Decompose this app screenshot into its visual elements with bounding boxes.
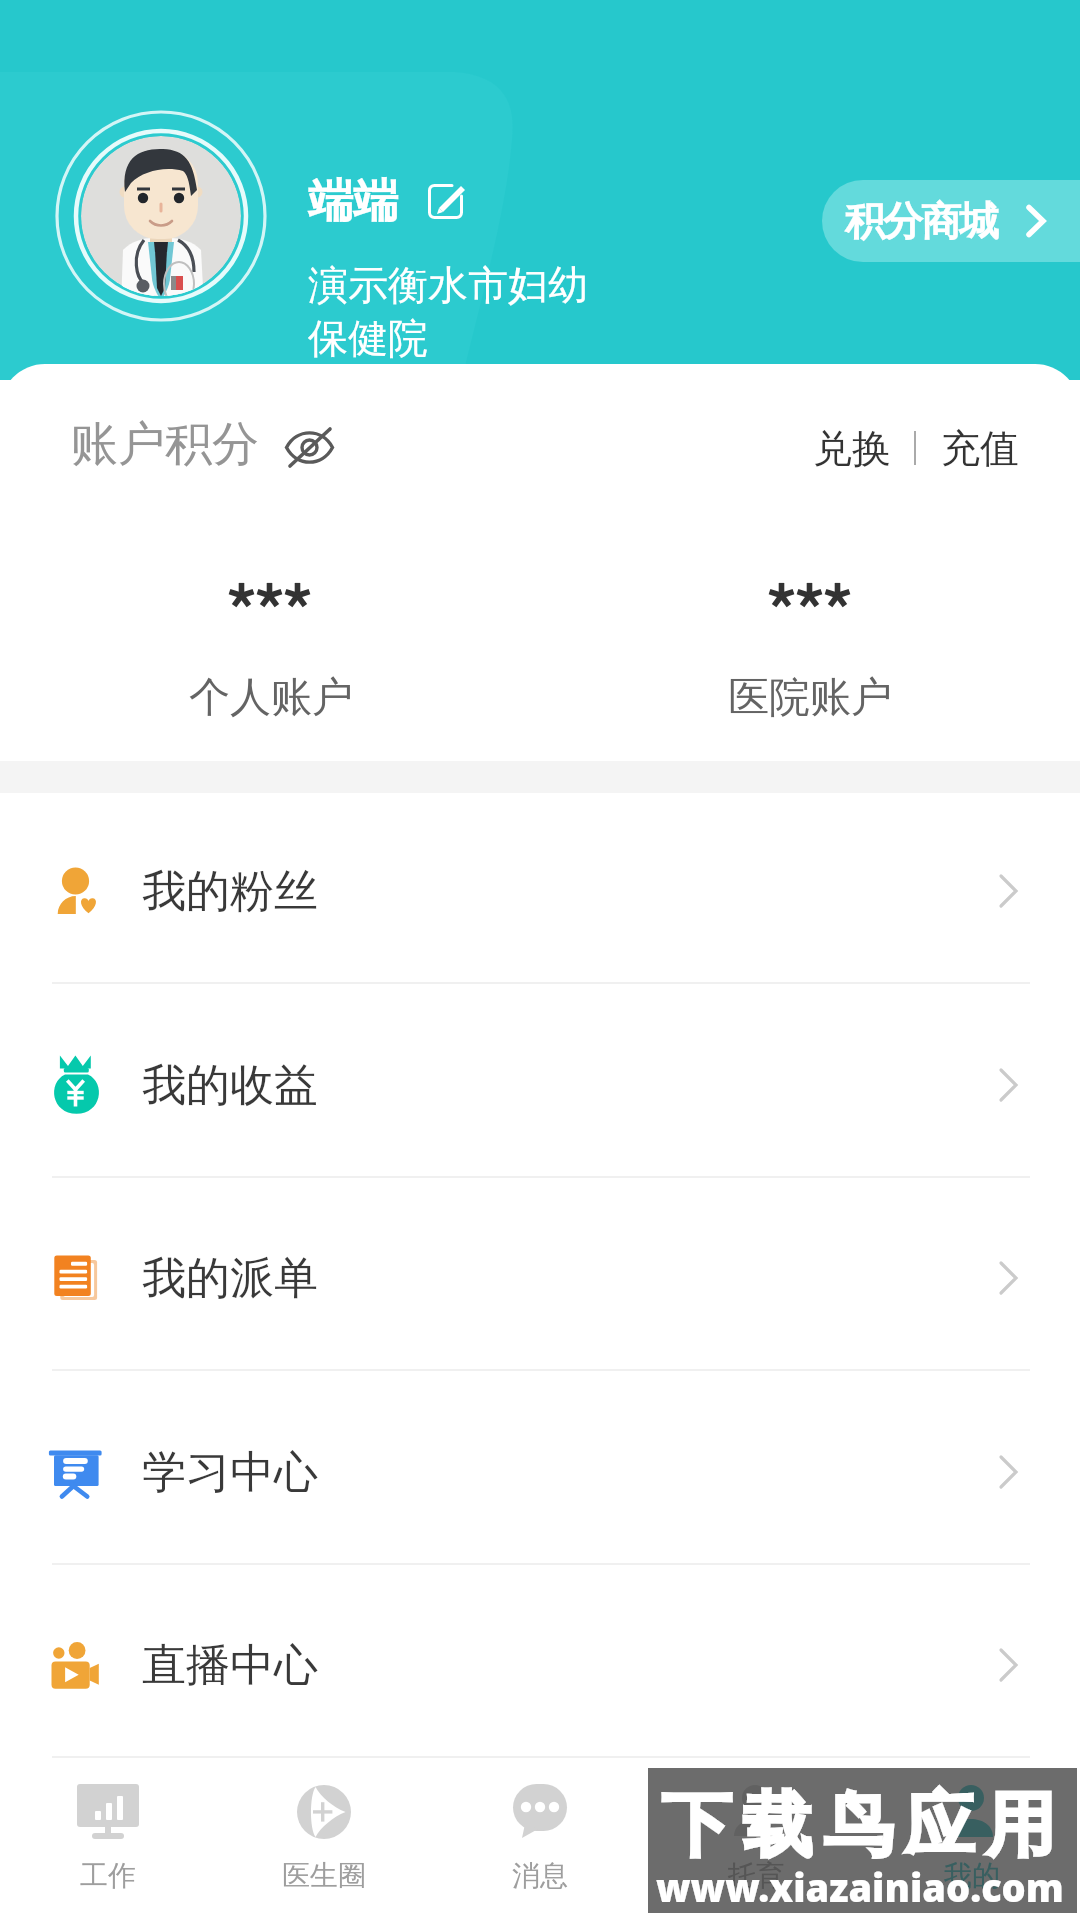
staticText: 下载鸟应用 (656, 1782, 1061, 1870)
staticText: 直播中心 (142, 1638, 318, 1693)
staticText: 医院账户 (728, 672, 892, 724)
staticText: 托育 (728, 1858, 784, 1893)
button[interactable]: 学习中心 (0, 1371, 1080, 1565)
button[interactable]: 我的粉丝 (0, 790, 1080, 984)
button[interactable]: 医生圈 (216, 1757, 432, 1920)
staticText: www.xiazainiao.com (656, 1861, 1064, 1913)
button[interactable]: 兑换 (806, 406, 898, 490)
staticText: 个人账户 (189, 672, 353, 724)
staticText: 我的 (944, 1858, 1000, 1893)
button[interactable]: 消息 (432, 1757, 648, 1920)
staticText: 我的粉丝 (142, 864, 318, 919)
staticText: 工作 (80, 1858, 136, 1893)
staticText: 我的收益 (142, 1058, 318, 1113)
button[interactable]: 托育 (648, 1757, 864, 1920)
button[interactable]: 直播中心 (0, 1564, 1080, 1758)
staticText: 账户积分 (71, 415, 259, 474)
staticText: 消息 (512, 1858, 568, 1893)
button[interactable]: 充值 (933, 406, 1027, 490)
staticText: 医生圈 (282, 1858, 366, 1893)
staticText: 兑换 (813, 424, 891, 473)
staticText: 保健院 (308, 313, 428, 363)
staticText: 端端 (308, 173, 398, 230)
button[interactable]: 我的派单 (0, 1177, 1080, 1371)
staticText: 积分商城 (846, 196, 998, 246)
button[interactable]: 我的 (864, 1757, 1080, 1920)
button[interactable]: 我的收益 (0, 984, 1080, 1178)
staticText: 我的派单 (142, 1251, 318, 1306)
button[interactable]: 工作 (0, 1757, 216, 1920)
button[interactable]: Profile photo (50, 105, 272, 327)
staticText: 演示衡水市妇幼 (308, 260, 588, 310)
button[interactable]: 积分商城 (822, 180, 1080, 262)
button[interactable]: Toggle points visibility (283, 424, 339, 480)
staticText: 充值 (941, 424, 1019, 473)
button[interactable]: Edit profile name (425, 181, 473, 229)
staticText: 学习中心 (142, 1445, 318, 1500)
